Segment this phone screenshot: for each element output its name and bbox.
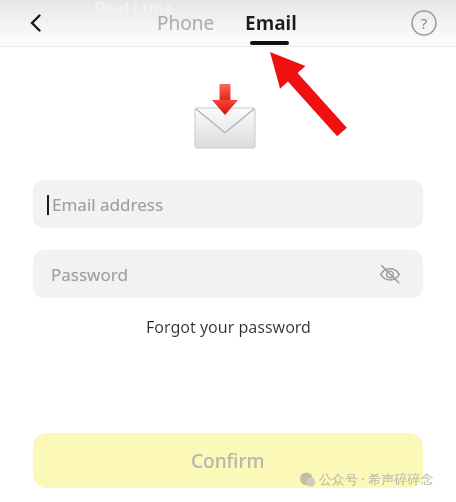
button[interactable]: Confirm: [33, 433, 423, 488]
button[interactable]: Phone: [148, 0, 224, 46]
staticText: Email address: [52, 193, 164, 216]
staticText: Forgot your password: [146, 316, 311, 338]
button[interactable]: Help: [402, 1, 446, 45]
button[interactable]: Show password: [375, 259, 405, 289]
staticText: Real Luna: [94, 0, 174, 19]
button[interactable]: Back: [14, 1, 58, 45]
staticText: 公众号 · 希声碎碎念: [319, 470, 434, 488]
button[interactable]: Forgot your password: [134, 310, 323, 344]
staticText: Password: [51, 263, 128, 286]
button[interactable]: Email: [238, 0, 304, 46]
button[interactable]: Email address: [33, 180, 423, 228]
staticText: ?: [421, 14, 428, 33]
staticText: Phone: [157, 10, 215, 36]
staticText: Confirm: [191, 448, 265, 474]
button[interactable]: Password: [33, 250, 423, 298]
staticText: Email: [245, 10, 297, 36]
